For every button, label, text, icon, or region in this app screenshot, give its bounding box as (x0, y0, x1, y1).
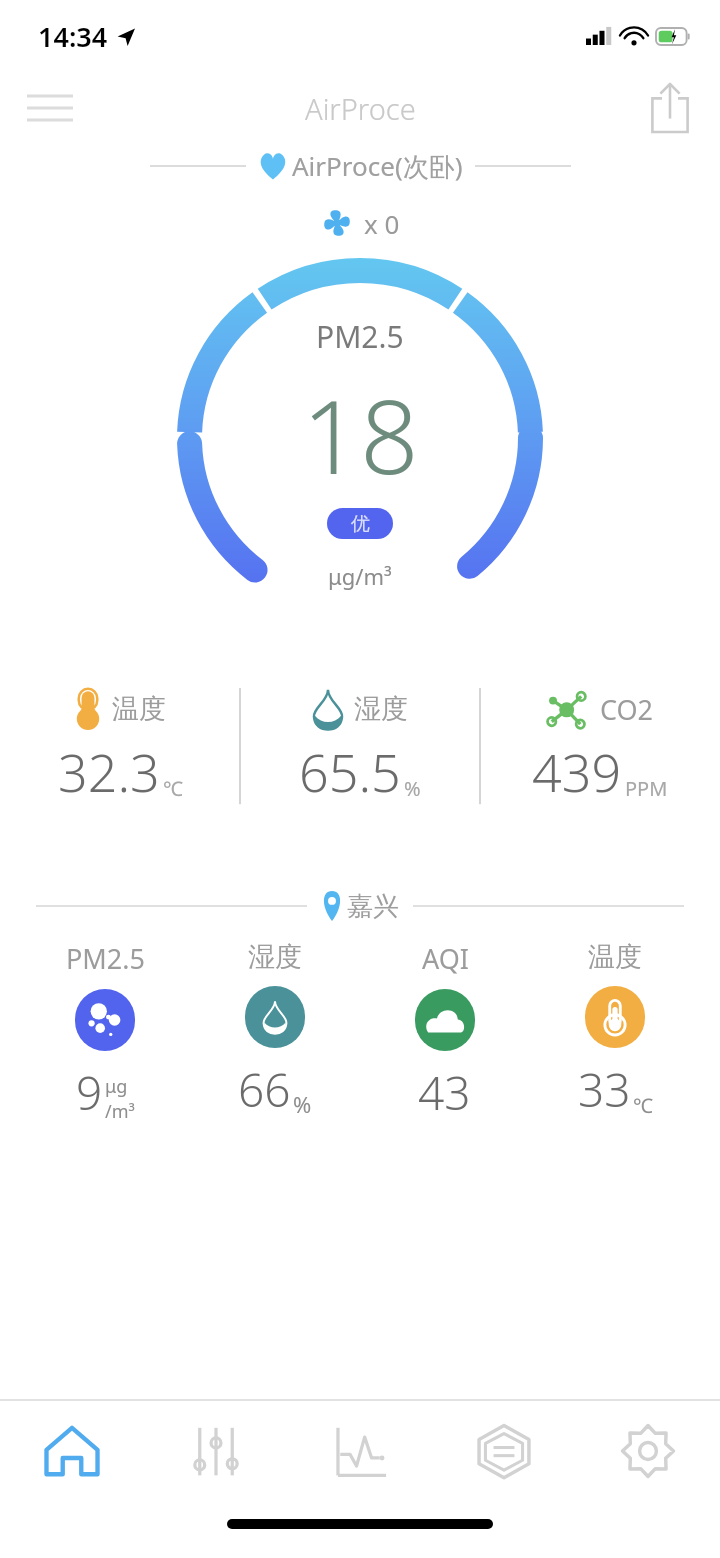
staticText: % (293, 1089, 312, 1119)
button[interactable]: Settings (576, 1401, 720, 1501)
staticText: 65.5 (299, 736, 401, 807)
staticText: 温度 (112, 692, 166, 726)
staticText: 66 (238, 1058, 291, 1121)
staticText: PM2.5 (66, 940, 145, 977)
staticText: AirProce(次卧) (292, 148, 463, 184)
button[interactable]: 湿度 (240, 674, 480, 807)
staticText: μg (105, 1074, 128, 1099)
staticText: PM2.5 (316, 316, 404, 357)
staticText: /m³ (105, 1099, 135, 1124)
staticText: ℃ (633, 1092, 653, 1119)
staticText: PPM (625, 775, 668, 802)
staticText: 14:34 (38, 18, 108, 55)
staticText: 18 (302, 365, 419, 504)
staticText: 优 (351, 512, 370, 536)
staticText: 湿度 (354, 692, 408, 726)
button[interactable]: 温度 (0, 674, 240, 807)
staticText: 43 (418, 1061, 471, 1124)
staticText: AirProce (305, 89, 416, 128)
staticText: 32.3 (58, 736, 160, 807)
button[interactable]: Filter (432, 1401, 576, 1501)
staticText: AQI (422, 940, 469, 977)
staticText: 温度 (588, 940, 642, 974)
staticText: 439 (532, 736, 622, 807)
staticText: 湿度 (248, 940, 302, 974)
button[interactable]: Statistics (288, 1401, 432, 1501)
button[interactable]: Controls (144, 1401, 288, 1501)
staticText: μg/m³ (328, 561, 392, 591)
button[interactable]: AirProce(次卧) (0, 144, 720, 188)
button[interactable]: AQI (360, 940, 530, 1124)
staticText: 9 (76, 1061, 103, 1124)
button[interactable]: Share (634, 72, 706, 144)
button[interactable]: CO2 (480, 674, 720, 807)
button[interactable]: Home (0, 1401, 144, 1501)
staticText: x 0 (364, 206, 400, 241)
button[interactable]: 优 (327, 508, 393, 539)
button[interactable]: 湿度 (190, 940, 360, 1121)
staticText: % (404, 775, 421, 802)
staticText: 嘉兴 (347, 890, 399, 923)
button[interactable]: Menu (14, 72, 86, 144)
button[interactable]: PM2.5 (20, 940, 190, 1124)
staticText: 33 (578, 1058, 631, 1121)
staticText: ℃ (163, 775, 183, 802)
button[interactable]: 温度 (530, 940, 700, 1121)
staticText: CO2 (600, 691, 654, 728)
